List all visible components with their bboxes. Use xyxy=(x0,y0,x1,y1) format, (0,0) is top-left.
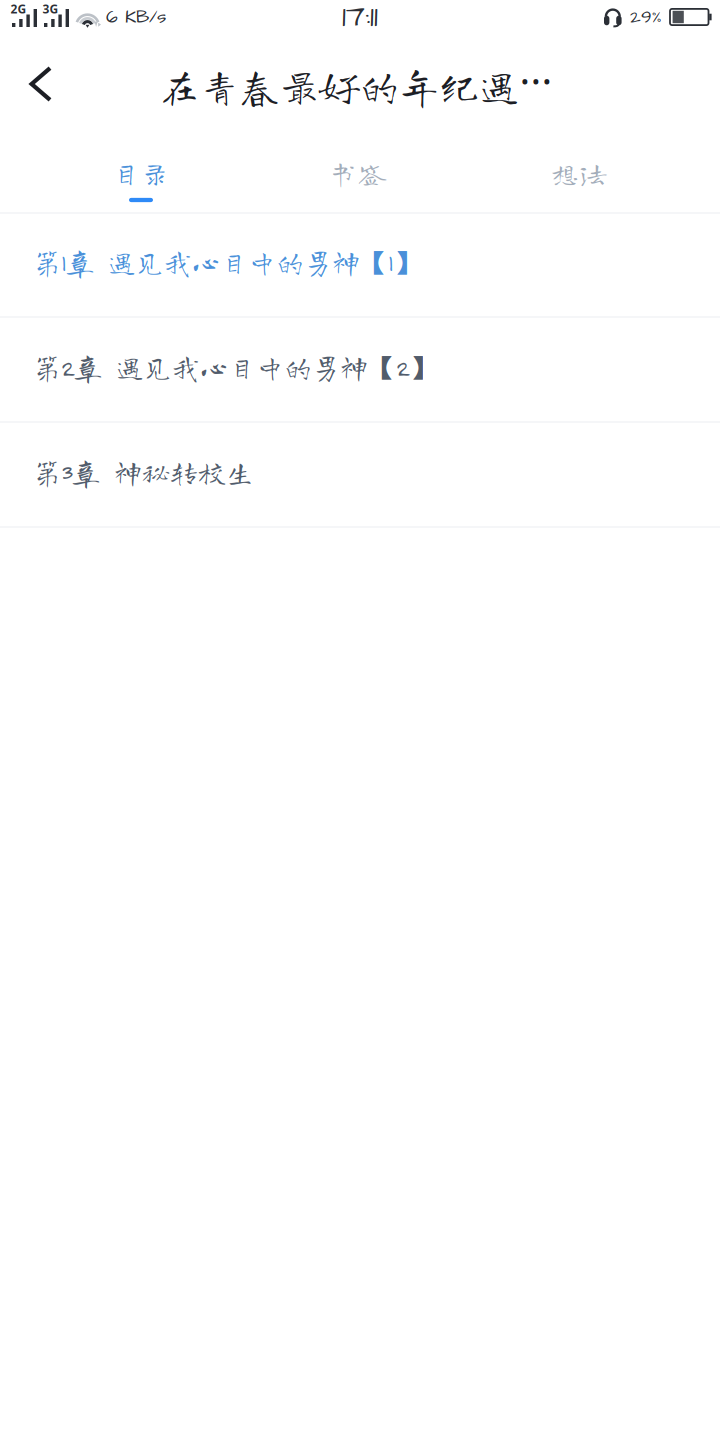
button[interactable]: 第1章 遇见我心目中的男神【1】 xyxy=(0,210,720,314)
staticText: 29% xyxy=(630,4,662,30)
button[interactable]: 目录 xyxy=(0,138,240,214)
staticText: 第1章 遇见我心目中的男神【1】 xyxy=(33,248,421,276)
button[interactable]: 想法 xyxy=(480,138,720,214)
button[interactable]: 书签 xyxy=(240,138,480,214)
staticText: 书签 xyxy=(329,158,387,188)
staticText: 第3章 神秘转校生 xyxy=(33,458,254,486)
staticText: 3G xyxy=(43,1,59,17)
staticText: 第2章 遇见我心目中的男神【2】 xyxy=(33,353,437,381)
button[interactable]: 第2章 遇见我心目中的男神【2】 xyxy=(0,315,720,419)
button[interactable]: Back xyxy=(1,44,81,124)
staticText: 2G xyxy=(11,1,27,17)
staticText: 想法 xyxy=(550,158,608,188)
button[interactable]: 第3章 神秘转校生 xyxy=(0,420,720,524)
staticText: 目录 xyxy=(111,158,169,188)
staticText: 17:11 xyxy=(342,0,378,38)
staticText: 在青春最好的年纪遇··· xyxy=(159,53,552,107)
staticText: 6 KB/s xyxy=(106,4,166,30)
